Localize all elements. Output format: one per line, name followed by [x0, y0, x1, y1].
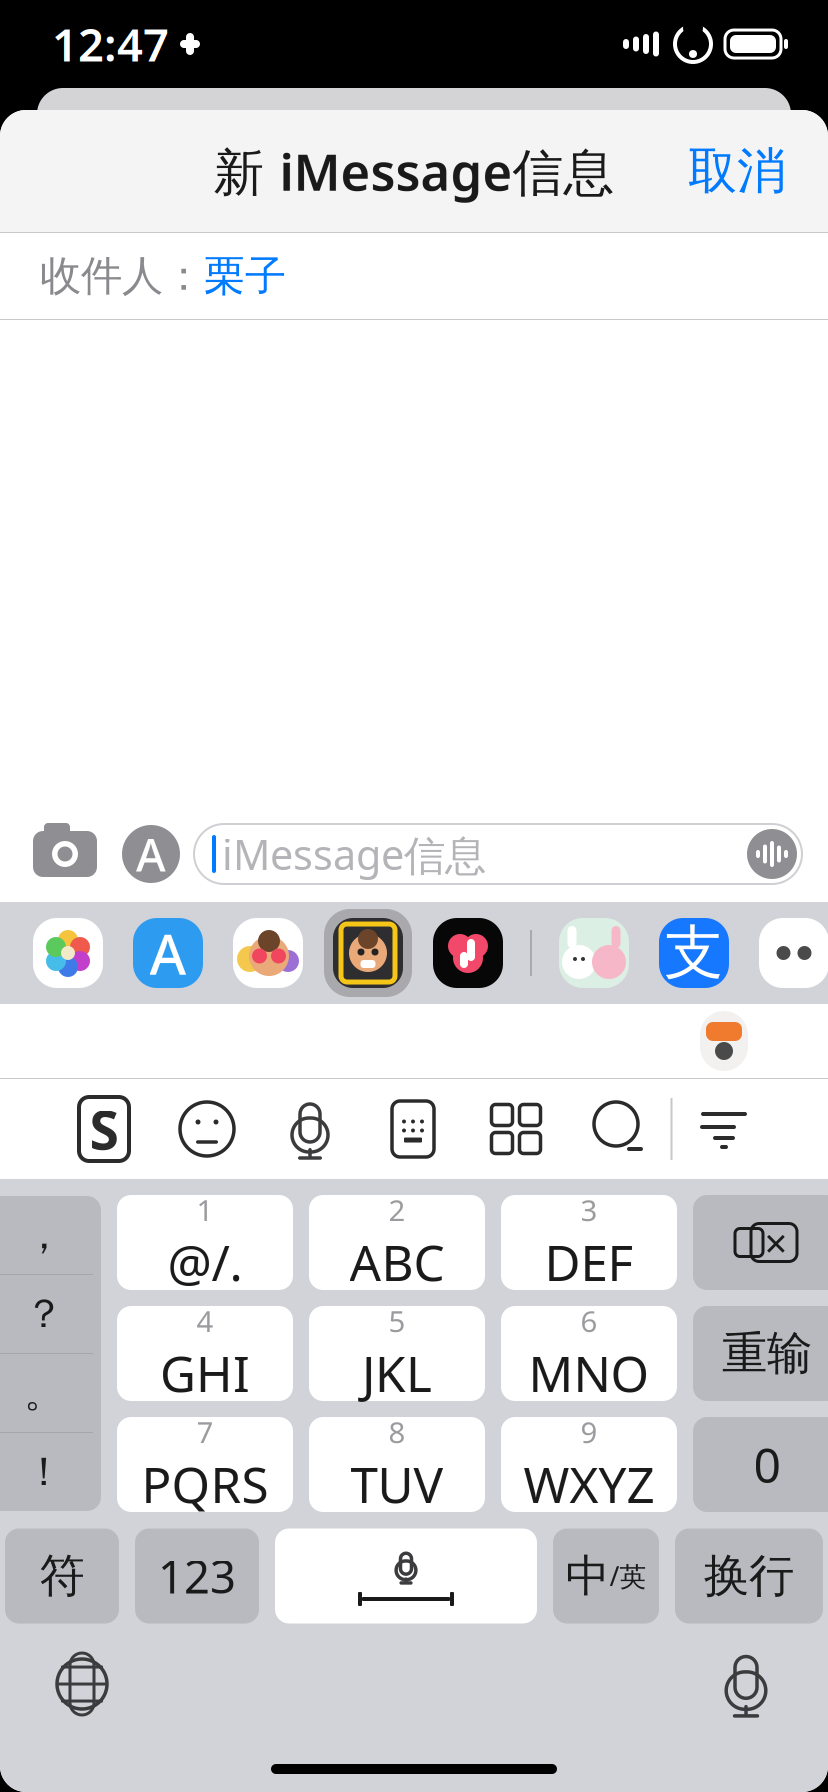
- staticText: ABC: [349, 1229, 444, 1295]
- button[interactable]: ，: [0, 1196, 101, 1274]
- button[interactable]: ！: [0, 1433, 101, 1511]
- staticText: 12:47: [52, 14, 169, 74]
- staticText: 8: [388, 1412, 405, 1451]
- staticText: 6: [580, 1301, 597, 1340]
- button[interactable]: 符: [5, 1528, 119, 1623]
- button[interactable]: 9: [501, 1417, 677, 1512]
- staticText: 7: [196, 1412, 213, 1451]
- staticText: 2: [388, 1190, 405, 1229]
- staticText: PQRS: [141, 1451, 268, 1517]
- staticText: /英: [609, 1558, 646, 1594]
- staticText: 5: [388, 1301, 405, 1340]
- staticText: JKL: [362, 1340, 432, 1406]
- staticText: 123: [158, 1546, 236, 1606]
- button[interactable]: ？: [0, 1275, 101, 1353]
- button[interactable]: 录制音频信息: [746, 828, 798, 880]
- staticText: GHI: [160, 1340, 250, 1406]
- button[interactable]: 换行: [675, 1528, 823, 1623]
- staticText: iMessage信息: [222, 826, 486, 881]
- staticText: 9: [580, 1412, 597, 1451]
- staticText: 符: [39, 1548, 84, 1604]
- staticText: 1: [196, 1190, 213, 1229]
- button[interactable]: 拟我表情: [218, 918, 318, 988]
- button[interactable]: 3: [501, 1195, 677, 1290]
- button[interactable]: 1: [117, 1195, 293, 1290]
- button[interactable]: 中: [553, 1528, 659, 1623]
- staticText: 新 iMessage信息: [213, 137, 614, 205]
- staticText: WXYZ: [523, 1451, 654, 1517]
- button[interactable]: 动话表情: [318, 909, 418, 997]
- staticText: S: [89, 1094, 118, 1164]
- staticText: DEF: [544, 1229, 633, 1295]
- button[interactable]: 照片: [18, 918, 118, 988]
- staticText: A: [149, 916, 186, 990]
- staticText: 支: [664, 917, 723, 989]
- button[interactable]: 重输: [693, 1306, 828, 1401]
- staticText: @/.: [167, 1229, 242, 1295]
- button[interactable]: 8: [309, 1417, 485, 1512]
- button[interactable]: App 商店: [108, 811, 194, 897]
- button[interactable]: 收件人：: [0, 233, 828, 319]
- staticText: ？: [24, 1289, 64, 1338]
- button[interactable]: 切换键盘: [30, 1640, 134, 1728]
- button[interactable]: 空格: [275, 1528, 537, 1623]
- button[interactable]: 搜索: [567, 1079, 670, 1179]
- button[interactable]: 收起键盘: [672, 1079, 775, 1179]
- staticText: 0: [753, 1433, 780, 1496]
- staticText: 栗子: [204, 251, 286, 301]
- button[interactable]: 2: [309, 1195, 485, 1290]
- button[interactable]: 删除: [693, 1195, 828, 1290]
- button[interactable]: 贴纸: [544, 918, 644, 988]
- button[interactable]: 听写: [694, 1640, 798, 1728]
- button[interactable]: 7: [117, 1417, 293, 1512]
- button[interactable]: 搜狗输入法: [52, 1079, 155, 1179]
- button[interactable]: 更多功能: [464, 1079, 567, 1179]
- button[interactable]: 123: [135, 1528, 259, 1623]
- button[interactable]: 更多: [744, 918, 828, 988]
- staticText: ！: [24, 1447, 64, 1496]
- button[interactable]: 表情: [155, 1079, 258, 1179]
- staticText: ×: [764, 1216, 787, 1269]
- staticText: A: [136, 824, 166, 884]
- button[interactable]: 支付宝: [644, 918, 744, 988]
- staticText: 重输: [722, 1326, 812, 1381]
- button[interactable]: 健身: [418, 918, 518, 988]
- button[interactable]: 。: [0, 1354, 101, 1432]
- button[interactable]: 4: [117, 1306, 293, 1401]
- staticText: 换行: [704, 1548, 794, 1604]
- staticText: 取消: [688, 141, 786, 201]
- staticText: 4: [196, 1301, 213, 1340]
- button[interactable]: 0: [693, 1417, 828, 1512]
- button[interactable]: 键盘设置: [361, 1079, 464, 1179]
- staticText: ，: [24, 1210, 64, 1259]
- staticText: MNO: [528, 1340, 649, 1406]
- button[interactable]: 5: [309, 1306, 485, 1401]
- button[interactable]: 语音输入: [258, 1079, 361, 1179]
- button[interactable]: 拍照: [22, 811, 108, 897]
- staticText: 收件人：: [40, 251, 204, 301]
- button[interactable]: App 商店: [118, 918, 218, 988]
- staticText: 。: [24, 1368, 64, 1417]
- button[interactable]: 6: [501, 1306, 677, 1401]
- button[interactable]: 取消: [668, 125, 806, 217]
- staticText: 3: [580, 1190, 597, 1229]
- staticText: TUV: [350, 1451, 443, 1517]
- staticText: 中: [565, 1549, 609, 1603]
- button[interactable]: 表情候选: [700, 1011, 748, 1071]
